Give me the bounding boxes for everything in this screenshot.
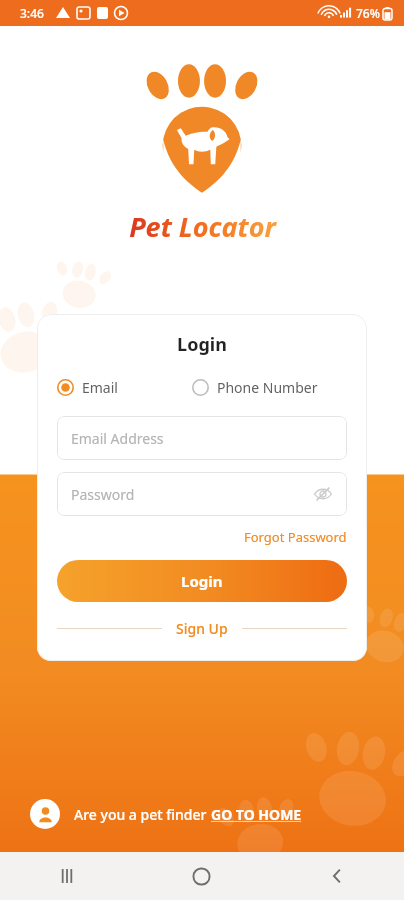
staticText: Login: [57, 332, 347, 357]
button[interactable]: Home: [134, 852, 269, 900]
button[interactable]: Are you a pet finder: [0, 776, 404, 852]
staticText: Email Address: [71, 429, 164, 448]
button[interactable]: Email Address: [57, 416, 347, 460]
button[interactable]: Recent apps: [0, 852, 134, 900]
staticText: GO TO HOME: [211, 805, 302, 824]
staticText: Are you a pet finder: [74, 805, 211, 824]
button[interactable]: Password: [57, 472, 347, 516]
staticText: Phone Number: [217, 378, 318, 397]
button[interactable]: Back: [269, 852, 404, 900]
button[interactable]: Sign Up: [162, 616, 242, 641]
button[interactable]: Phone Number: [192, 375, 347, 400]
staticText: Password: [71, 485, 135, 504]
button[interactable]: Login: [57, 560, 347, 602]
other: Show password: [313, 484, 333, 504]
staticText: 3:46: [20, 5, 44, 21]
staticText: 76%: [356, 5, 380, 21]
staticText: Login: [181, 571, 223, 591]
button[interactable]: Email: [57, 375, 192, 400]
staticText: Email: [82, 378, 118, 397]
button[interactable]: Forgot Password: [244, 526, 347, 548]
staticText: Pet Locator: [129, 208, 276, 245]
